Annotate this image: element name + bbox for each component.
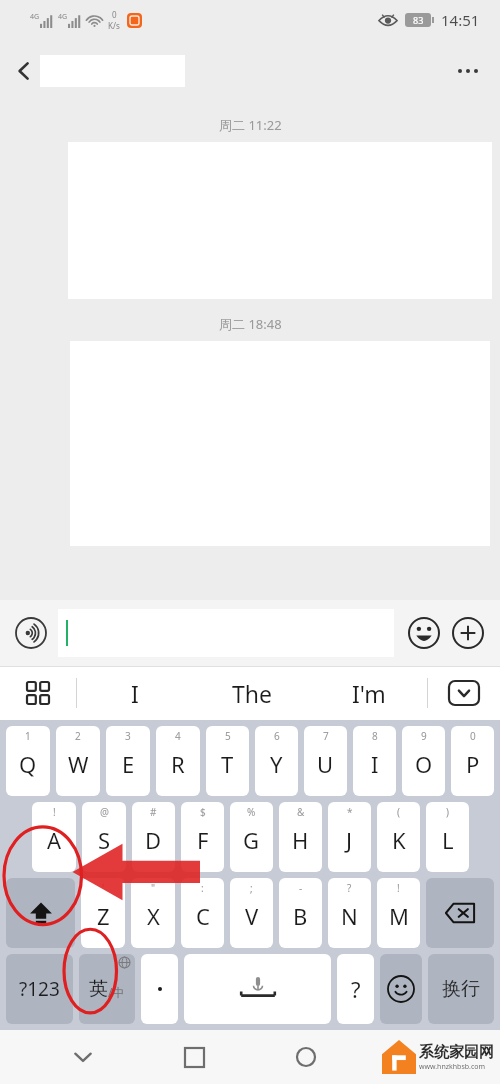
staticText: G bbox=[243, 825, 260, 855]
button[interactable]: 4 bbox=[156, 726, 200, 796]
button[interactable]: Recents bbox=[166, 1030, 222, 1084]
button[interactable]: 7 bbox=[304, 726, 347, 796]
button[interactable]: 3 bbox=[106, 726, 150, 796]
staticText: 5 bbox=[225, 729, 231, 743]
button[interactable]: 9 bbox=[402, 726, 445, 796]
staticText: % bbox=[247, 805, 256, 819]
button[interactable]: 2 bbox=[56, 726, 100, 796]
button[interactable]: The bbox=[193, 666, 310, 720]
button[interactable]: Hide keyboard bbox=[428, 666, 500, 720]
staticText: K/s bbox=[108, 20, 120, 31]
button[interactable] bbox=[58, 609, 394, 657]
staticText: /中 bbox=[108, 984, 125, 1000]
button[interactable]: More options bbox=[444, 47, 492, 95]
button[interactable]: ' bbox=[81, 878, 125, 948]
staticText: ? bbox=[351, 974, 361, 1004]
button[interactable]: Backspace bbox=[426, 878, 494, 948]
staticText: www.hnzkhbsb.com bbox=[419, 1062, 486, 1072]
button[interactable]: ; bbox=[230, 878, 273, 948]
button[interactable]: Back bbox=[0, 47, 48, 95]
button[interactable]: ? bbox=[337, 954, 374, 1024]
staticText: P bbox=[466, 749, 480, 779]
staticText: $ bbox=[200, 805, 206, 819]
staticText: 英 bbox=[89, 977, 108, 1001]
staticText: D bbox=[145, 825, 162, 855]
button[interactable]: 8 bbox=[353, 726, 396, 796]
staticText: * bbox=[347, 805, 353, 819]
staticText: 换行 bbox=[442, 977, 480, 1001]
button[interactable]: 1 bbox=[6, 726, 50, 796]
staticText: I bbox=[371, 749, 379, 779]
other: Shift bbox=[28, 900, 54, 926]
staticText: N bbox=[341, 901, 358, 931]
staticText: J bbox=[346, 825, 353, 855]
staticText: ! bbox=[53, 805, 56, 819]
button[interactable]: * bbox=[328, 802, 371, 872]
button[interactable]: ( bbox=[377, 802, 420, 872]
button[interactable]: Keyboard menu bbox=[0, 666, 76, 720]
staticText: 6 bbox=[274, 729, 280, 743]
staticText: ) bbox=[446, 805, 449, 819]
staticText: I bbox=[131, 678, 139, 709]
button[interactable]: Switch language bbox=[79, 954, 135, 1024]
button[interactable]: % bbox=[230, 802, 273, 872]
button[interactable]: ! bbox=[32, 802, 76, 872]
staticText: F bbox=[197, 825, 209, 855]
button[interactable]: ) bbox=[426, 802, 469, 872]
staticText: ? bbox=[347, 881, 352, 895]
button[interactable]: ? bbox=[328, 878, 371, 948]
button[interactable] bbox=[141, 954, 178, 1024]
button[interactable]: I bbox=[77, 666, 193, 720]
staticText: # bbox=[150, 805, 157, 819]
button[interactable]: I'm bbox=[310, 666, 427, 720]
button[interactable]: $ bbox=[181, 802, 224, 872]
button[interactable]: Back bbox=[55, 1030, 111, 1084]
staticText: 3 bbox=[125, 729, 131, 743]
button[interactable]: : bbox=[181, 878, 224, 948]
staticText: R bbox=[171, 749, 185, 779]
button[interactable]: Home bbox=[278, 1030, 334, 1084]
staticText: 周二 11:22 bbox=[219, 116, 282, 134]
staticText: V bbox=[245, 901, 259, 931]
staticText: 4G bbox=[30, 12, 40, 22]
button[interactable]: More functions bbox=[448, 613, 488, 653]
staticText: K bbox=[392, 825, 406, 855]
button[interactable]: Emoji keyboard bbox=[380, 954, 422, 1024]
button[interactable]: & bbox=[279, 802, 322, 872]
staticText: 83 bbox=[413, 14, 424, 26]
other: Emoji keyboard bbox=[387, 975, 415, 1003]
button[interactable]: 换行 bbox=[428, 954, 494, 1024]
staticText: Q bbox=[19, 749, 37, 779]
staticText: 9 bbox=[421, 729, 427, 743]
button[interactable]: - bbox=[279, 878, 322, 948]
button[interactable]: ! bbox=[377, 878, 420, 948]
staticText: ( bbox=[397, 805, 400, 819]
staticText: 周二 18:48 bbox=[219, 315, 282, 333]
staticText: ! bbox=[397, 881, 400, 895]
staticText: 4G bbox=[58, 12, 68, 22]
staticText: U bbox=[317, 749, 334, 779]
staticText: H bbox=[292, 825, 309, 855]
button[interactable]: 5 bbox=[206, 726, 249, 796]
staticText: : bbox=[201, 881, 204, 895]
other: Switch language bbox=[79, 954, 135, 1024]
staticText: B bbox=[293, 901, 308, 931]
button[interactable]: ?123 bbox=[6, 954, 73, 1024]
button[interactable]: 6 bbox=[255, 726, 298, 796]
button[interactable]: Voice input bbox=[12, 614, 50, 652]
button[interactable]: Emoji bbox=[404, 613, 444, 653]
button[interactable]: Space bbox=[184, 954, 331, 1024]
button[interactable]: # bbox=[132, 802, 175, 872]
staticText: M bbox=[389, 901, 409, 931]
staticText: O bbox=[415, 749, 433, 779]
staticText: S bbox=[98, 825, 111, 855]
button[interactable]: 0 bbox=[451, 726, 494, 796]
button[interactable]: @ bbox=[82, 802, 126, 872]
button[interactable]: " bbox=[131, 878, 175, 948]
button[interactable]: Shift bbox=[6, 878, 75, 948]
other: Backspace bbox=[445, 902, 475, 924]
staticText: Y bbox=[270, 749, 283, 779]
